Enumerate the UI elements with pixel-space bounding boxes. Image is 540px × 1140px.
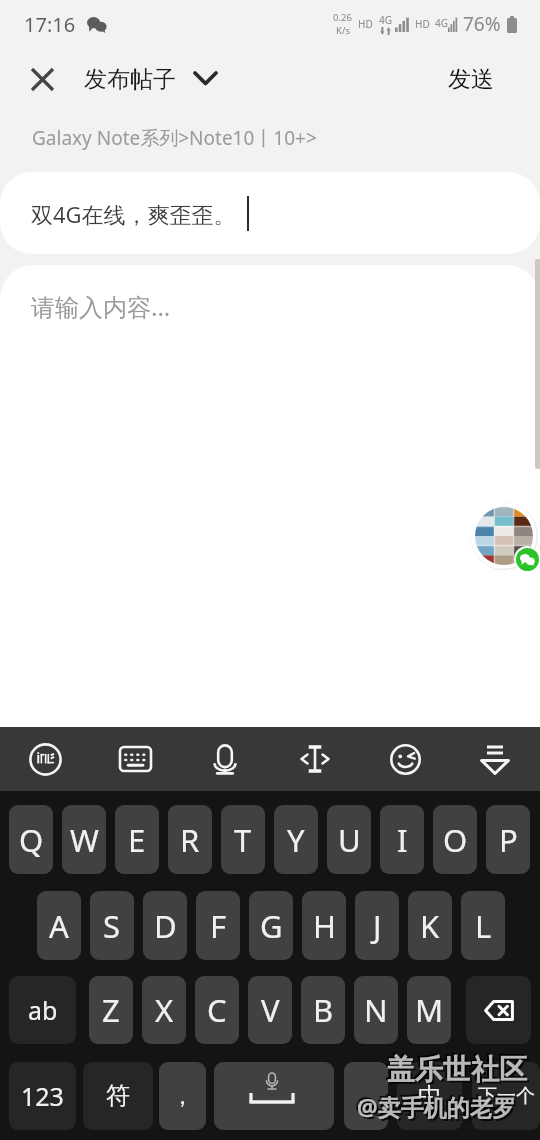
- staticText: 盖乐世社区: [385, 1050, 525, 1085]
- button[interactable]: WeChat floating window: [470, 502, 540, 572]
- staticText: 。: [355, 1082, 378, 1111]
- button[interactable]: 双4G在线，爽歪歪。: [0, 172, 540, 254]
- staticText: 中: [418, 1081, 442, 1111]
- staticText: D: [154, 905, 177, 947]
- button[interactable]: F: [196, 891, 240, 960]
- staticText: P: [499, 819, 518, 861]
- staticText: ，: [171, 1082, 194, 1111]
- staticText: R: [180, 819, 200, 861]
- staticText: T: [234, 819, 252, 861]
- staticText: @卖手机的老罗: [355, 1089, 514, 1120]
- button[interactable]: Keyboard layout: [90, 727, 180, 791]
- button[interactable]: I: [380, 805, 424, 874]
- staticText: A: [49, 905, 69, 947]
- button[interactable]: Voice input: [180, 727, 270, 791]
- staticText: X: [155, 989, 174, 1031]
- staticText: C: [207, 989, 227, 1031]
- staticText: 76%: [463, 11, 501, 37]
- button[interactable]: T: [221, 805, 265, 874]
- staticText: H: [313, 905, 336, 947]
- button[interactable]: Space: [214, 1062, 334, 1130]
- staticText: 请输入内容...: [31, 290, 171, 323]
- staticText: 双4G在线，爽歪歪。: [31, 199, 236, 229]
- button[interactable]: Emoji: [360, 727, 450, 791]
- button[interactable]: 请输入内容...: [0, 265, 540, 727]
- button[interactable]: Y: [274, 805, 318, 874]
- button[interactable]: Input method: [0, 727, 90, 791]
- button[interactable]: O: [433, 805, 477, 874]
- button[interactable]: Z: [89, 976, 133, 1044]
- button[interactable]: D: [143, 891, 187, 960]
- button[interactable]: Backspace: [466, 976, 531, 1044]
- staticText: 0.26: [333, 11, 352, 24]
- staticText: Q: [19, 819, 44, 861]
- staticText: 17:16: [24, 11, 76, 38]
- staticText: N: [364, 989, 388, 1031]
- button[interactable]: 。: [344, 1062, 388, 1130]
- staticText: K/s: [336, 24, 350, 37]
- staticText: J: [373, 905, 382, 947]
- staticText: Y: [287, 819, 305, 861]
- button[interactable]: U: [327, 805, 371, 874]
- staticText: 盖乐世社区: [387, 1052, 527, 1087]
- button[interactable]: 发送: [448, 48, 494, 110]
- button[interactable]: X: [142, 976, 186, 1044]
- staticText: 发布帖子: [84, 65, 176, 94]
- staticText: Galaxy Note系列>Note10丨10+>: [32, 125, 317, 151]
- button[interactable]: 下一个: [472, 1062, 540, 1130]
- button[interactable]: G: [249, 891, 293, 960]
- button[interactable]: 123: [9, 1062, 76, 1130]
- button[interactable]: J: [355, 891, 399, 960]
- staticText: HD: [415, 17, 430, 31]
- staticText: 发送: [448, 65, 494, 94]
- button[interactable]: 符: [83, 1062, 153, 1130]
- button[interactable]: ab: [9, 976, 76, 1044]
- button[interactable]: B: [301, 976, 345, 1044]
- button[interactable]: W: [62, 805, 106, 874]
- staticText: V: [261, 989, 280, 1031]
- button[interactable]: N: [354, 976, 398, 1044]
- button[interactable]: Q: [9, 805, 53, 874]
- button[interactable]: ，: [159, 1062, 206, 1130]
- button[interactable]: C: [195, 976, 239, 1044]
- button[interactable]: P: [486, 805, 530, 874]
- staticText: 4G: [379, 13, 392, 27]
- staticText: O: [443, 819, 468, 861]
- button[interactable]: H: [302, 891, 346, 960]
- staticText: W: [70, 819, 99, 861]
- button[interactable]: E: [115, 805, 159, 874]
- staticText: Z: [102, 989, 120, 1031]
- staticText: B: [313, 989, 334, 1031]
- button[interactable]: R: [168, 805, 212, 874]
- staticText: 盖乐世社区: [389, 1054, 529, 1089]
- staticText: 符: [106, 1081, 130, 1111]
- button[interactable]: V: [248, 976, 292, 1044]
- staticText: HD: [358, 17, 373, 31]
- staticText: E: [128, 819, 146, 861]
- staticText: S: [103, 905, 121, 947]
- staticText: M: [415, 989, 444, 1031]
- staticText: F: [210, 905, 227, 947]
- staticText: L: [475, 905, 492, 947]
- button[interactable]: S: [90, 891, 134, 960]
- staticText: @卖手机的老罗: [359, 1093, 518, 1124]
- button[interactable]: K: [408, 891, 452, 960]
- staticText: I: [397, 819, 408, 861]
- staticText: ab: [28, 993, 58, 1027]
- staticText: 123: [21, 1079, 64, 1113]
- staticText: 下一个: [478, 1084, 535, 1108]
- button[interactable]: M: [407, 976, 451, 1044]
- button[interactable]: 中: [397, 1062, 462, 1130]
- staticText: G: [260, 905, 283, 947]
- button[interactable]: L: [461, 891, 505, 960]
- button[interactable]: Close: [0, 48, 84, 110]
- staticText: U: [338, 819, 361, 861]
- button[interactable]: Hide keyboard: [450, 727, 540, 791]
- button[interactable]: A: [37, 891, 81, 960]
- staticText: 4G: [435, 16, 448, 30]
- staticText: @卖手机的老罗: [357, 1091, 516, 1122]
- button[interactable]: Move cursor: [270, 727, 360, 791]
- button[interactable]: 发布帖子: [84, 48, 218, 110]
- staticText: K: [420, 905, 440, 947]
